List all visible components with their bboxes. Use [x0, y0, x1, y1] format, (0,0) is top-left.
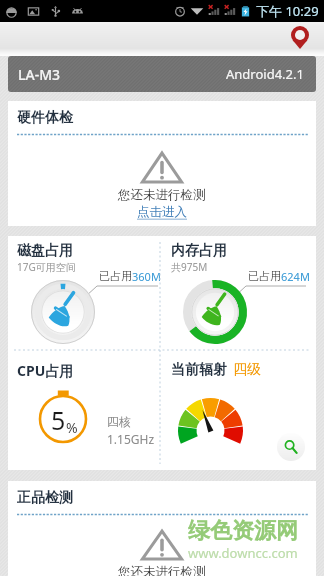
staticText: 四级: [233, 361, 261, 379]
staticText: 点击进入: [137, 204, 187, 220]
staticText: LA-M3: [18, 65, 60, 84]
staticText: %: [66, 418, 78, 437]
staticText: 四核: [107, 414, 131, 429]
staticText: 360M: [132, 269, 161, 284]
button[interactable]: Location: [291, 26, 309, 49]
button[interactable]: Scan: [277, 433, 305, 461]
staticText: 1.15GHz: [107, 431, 155, 447]
staticText: 5: [51, 403, 66, 437]
button[interactable]: CPU占用: [8, 352, 160, 470]
button[interactable]: 点击进入: [137, 204, 187, 220]
staticText: 内存占用: [171, 242, 227, 260]
staticText: 绿色资源网: [188, 517, 298, 545]
button[interactable]: LA-M3: [8, 56, 316, 92]
staticText: 您还未进行检测: [118, 187, 206, 203]
staticText: 磁盘占用: [17, 242, 73, 260]
staticText: www.downcc.com: [188, 544, 298, 562]
staticText: 17G可用空间: [17, 260, 76, 274]
staticText: 硬件体检: [17, 109, 73, 127]
button[interactable]: 当前辐射: [162, 352, 316, 470]
button[interactable]: 内存占用: [162, 236, 316, 350]
button[interactable]: 磁盘占用: [8, 236, 160, 350]
staticText: 共975M: [171, 260, 208, 274]
staticText: 624M: [281, 269, 310, 284]
staticText: 您还未进行检测: [118, 564, 206, 576]
staticText: 已占用: [99, 269, 132, 283]
staticText: 已占用: [248, 269, 281, 283]
staticText: 当前辐射: [171, 361, 227, 379]
staticText: 正品检测: [17, 489, 73, 507]
staticText: 下午 10:29: [256, 2, 319, 20]
staticText: Android4.2.1: [226, 65, 304, 83]
staticText: CPU占用: [17, 361, 74, 380]
